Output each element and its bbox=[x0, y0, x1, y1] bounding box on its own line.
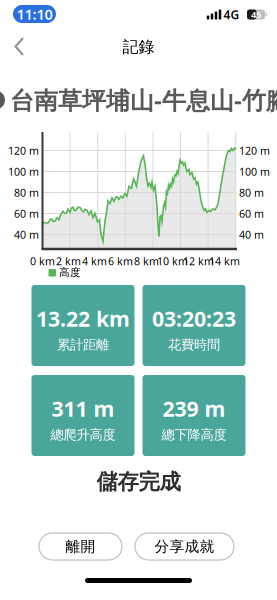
staticText: 10 km bbox=[157, 254, 188, 268]
staticText: 14 km bbox=[209, 254, 240, 268]
staticText: 120 m bbox=[8, 143, 39, 158]
staticText: 離開 bbox=[65, 537, 95, 555]
staticText: 60 m bbox=[239, 206, 264, 221]
staticText: 2 km bbox=[56, 254, 81, 268]
staticText: 花費時間 bbox=[168, 337, 220, 353]
staticText: 13.22 km bbox=[36, 304, 130, 333]
staticText: 11:10 bbox=[16, 4, 52, 24]
staticText: 12 km bbox=[183, 254, 214, 268]
staticText: 4G bbox=[223, 6, 239, 22]
button[interactable]: 分享成就 bbox=[135, 533, 234, 560]
staticText: 儲存完成 bbox=[96, 469, 180, 495]
staticText: 台南草坪埔山-牛息山-竹腳寮 bbox=[10, 84, 277, 116]
staticText: 239 m bbox=[162, 394, 225, 423]
staticText: 總爬升高度 bbox=[50, 427, 115, 443]
staticText: 40 m bbox=[14, 227, 39, 242]
staticText: 分享成就 bbox=[154, 537, 214, 555]
staticText: 40 m bbox=[239, 227, 264, 242]
staticText: 120 m bbox=[239, 143, 270, 158]
staticText: 8 km bbox=[134, 254, 159, 268]
staticText: 80 m bbox=[14, 185, 39, 200]
staticText: 4 km bbox=[82, 254, 107, 268]
staticText: 累計距離 bbox=[57, 337, 109, 353]
button[interactable]: 離開 bbox=[39, 533, 122, 560]
staticText: 03:20:23 bbox=[152, 304, 236, 333]
staticText: 60 m bbox=[14, 206, 39, 221]
staticText: 高度 bbox=[59, 266, 81, 279]
staticText: 6 km bbox=[108, 254, 133, 268]
staticText: 總下降高度 bbox=[161, 427, 226, 443]
button[interactable]: Return to call bbox=[13, 5, 56, 23]
staticText: 311 m bbox=[51, 394, 114, 423]
staticText: 100 m bbox=[239, 164, 270, 179]
staticText: 45 bbox=[251, 8, 261, 21]
staticText: 記錄 bbox=[122, 37, 154, 57]
staticText: 0 km bbox=[30, 254, 55, 268]
staticText: 80 m bbox=[239, 185, 264, 200]
staticText: 100 m bbox=[8, 164, 39, 179]
button[interactable]: Back bbox=[0, 30, 40, 63]
